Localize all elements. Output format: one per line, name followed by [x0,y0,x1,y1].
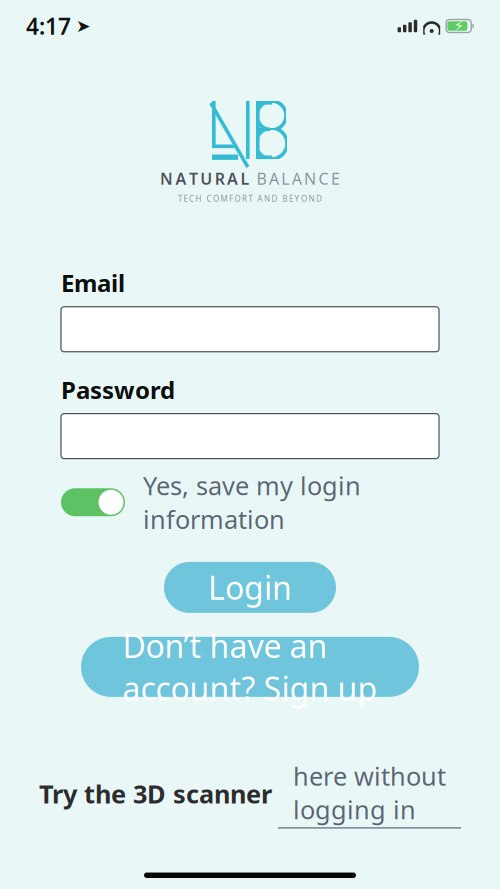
staticText: ⚡︎ [454,18,464,34]
staticText: L [281,168,289,189]
staticText: A [292,168,302,189]
staticText: B [282,193,287,204]
button[interactable]: Don’t have an account? Sign up [81,637,419,697]
staticText: Login [208,566,292,609]
staticText: D [271,193,277,204]
staticText: 4:17 [26,11,71,41]
staticText: T [189,168,198,189]
staticText: N [160,168,173,189]
button[interactable]: Login [164,562,336,613]
staticText: Yes, save my login information [143,469,361,536]
staticText: here without logging in [293,759,446,826]
staticText: B [256,168,266,189]
staticText: N [308,193,314,204]
button[interactable]: Try the 3D scanner [39,759,461,828]
staticText: E [289,193,293,204]
button[interactable]: Password [61,414,439,459]
staticText: A [227,168,238,189]
staticText: T [248,193,252,204]
staticText: L [240,168,249,189]
staticText: R [242,193,247,204]
staticText: F [229,193,233,204]
staticText: M [220,193,227,204]
staticText: C [206,193,211,204]
staticText: Try the 3D scanner [39,777,272,810]
staticText: U [200,168,212,189]
staticText: A [269,168,279,189]
staticText: N [264,193,270,204]
staticText: C [318,168,328,189]
staticText: D [316,193,322,204]
button[interactable]: Yes, save my login information [61,469,439,536]
staticText: A [257,193,262,204]
staticText: ➤ [76,16,91,36]
staticText: Y [294,193,299,204]
staticText: E [183,193,187,204]
staticText: O [301,193,307,204]
staticText: T [178,193,182,204]
staticText: C [189,193,194,204]
staticText: R [215,168,225,189]
staticText: Email [61,267,125,299]
staticText: N [304,168,316,189]
staticText: Password [61,374,175,406]
button[interactable]: Email [61,307,439,352]
staticText: Don’t have an account? Sign up [122,624,377,709]
staticText: O [234,193,240,204]
staticText: E [331,168,340,189]
staticText: O [213,193,219,204]
staticText: A [175,168,186,189]
staticText: H [195,193,201,204]
